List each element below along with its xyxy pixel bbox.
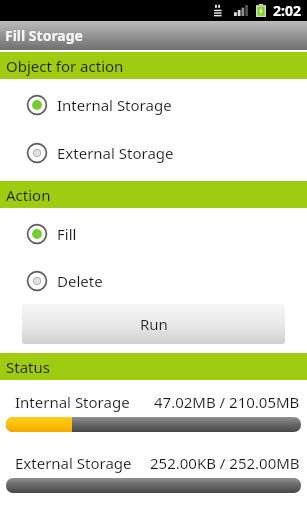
button[interactable]: Run [22,304,285,344]
staticText: 252.00KB / 252.00MB [150,453,300,473]
staticText: Internal Storage [15,392,130,412]
staticText: Object for action [6,56,124,76]
staticText: External Storage [15,453,132,473]
staticText: Internal Storage [57,95,172,115]
staticText: 47.02MB / 210.05MB [154,392,300,412]
staticText: Fill [57,224,77,244]
staticText: Status [6,357,50,377]
staticText: Run [140,314,168,334]
staticText: Delete [57,271,103,291]
button[interactable]: Delete [0,269,307,293]
staticText: Fill Storage [5,26,83,45]
button[interactable]: Internal Storage [0,93,307,117]
staticText: External Storage [57,143,174,163]
button[interactable]: External Storage [0,141,307,165]
button[interactable]: Fill [0,222,307,246]
staticText: Action [6,185,51,205]
staticText: 2:02 [273,1,301,20]
